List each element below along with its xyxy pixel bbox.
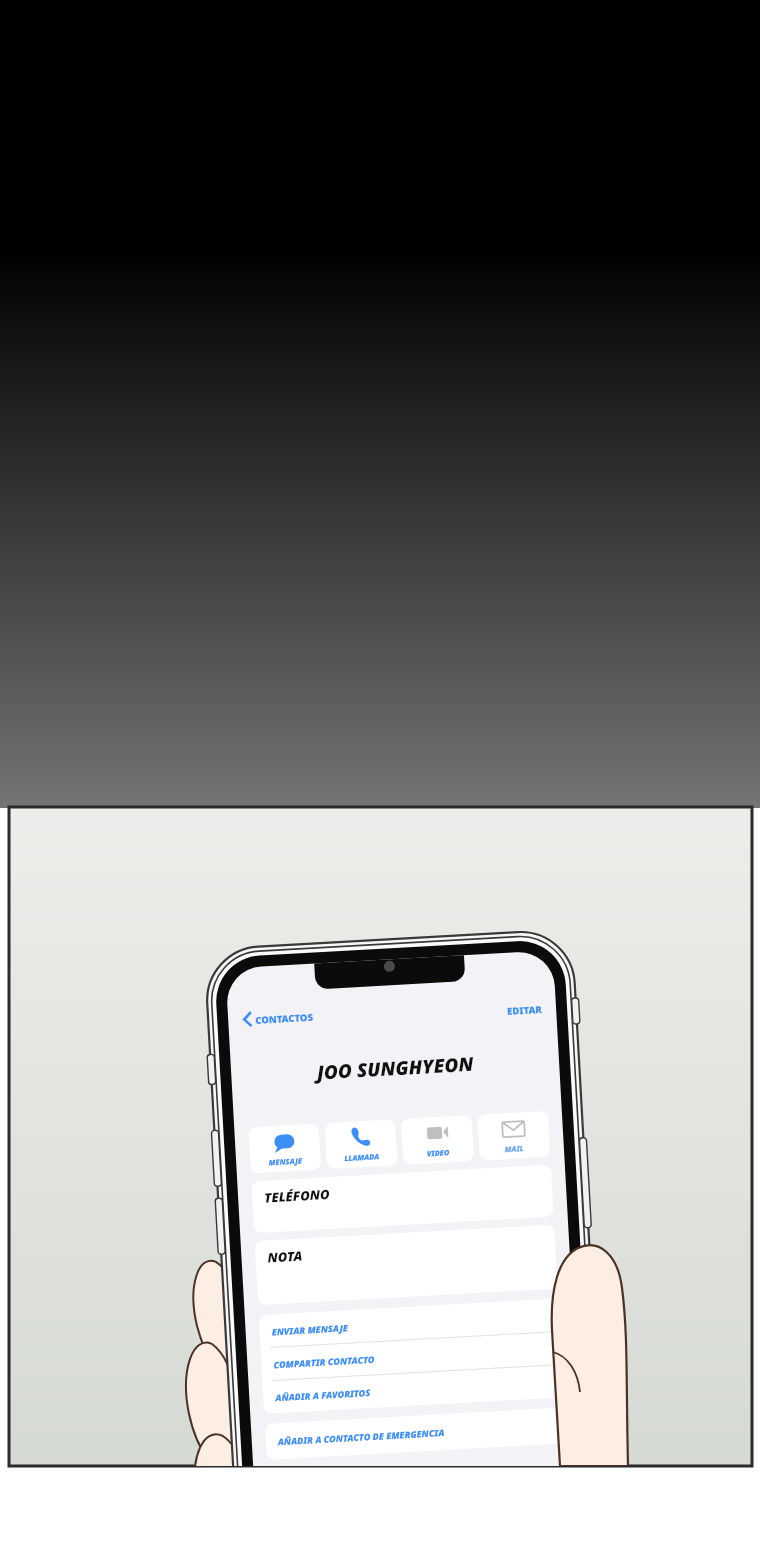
button[interactable]: Comic panel: hands holding a phone showi… [0,0,760,1563]
